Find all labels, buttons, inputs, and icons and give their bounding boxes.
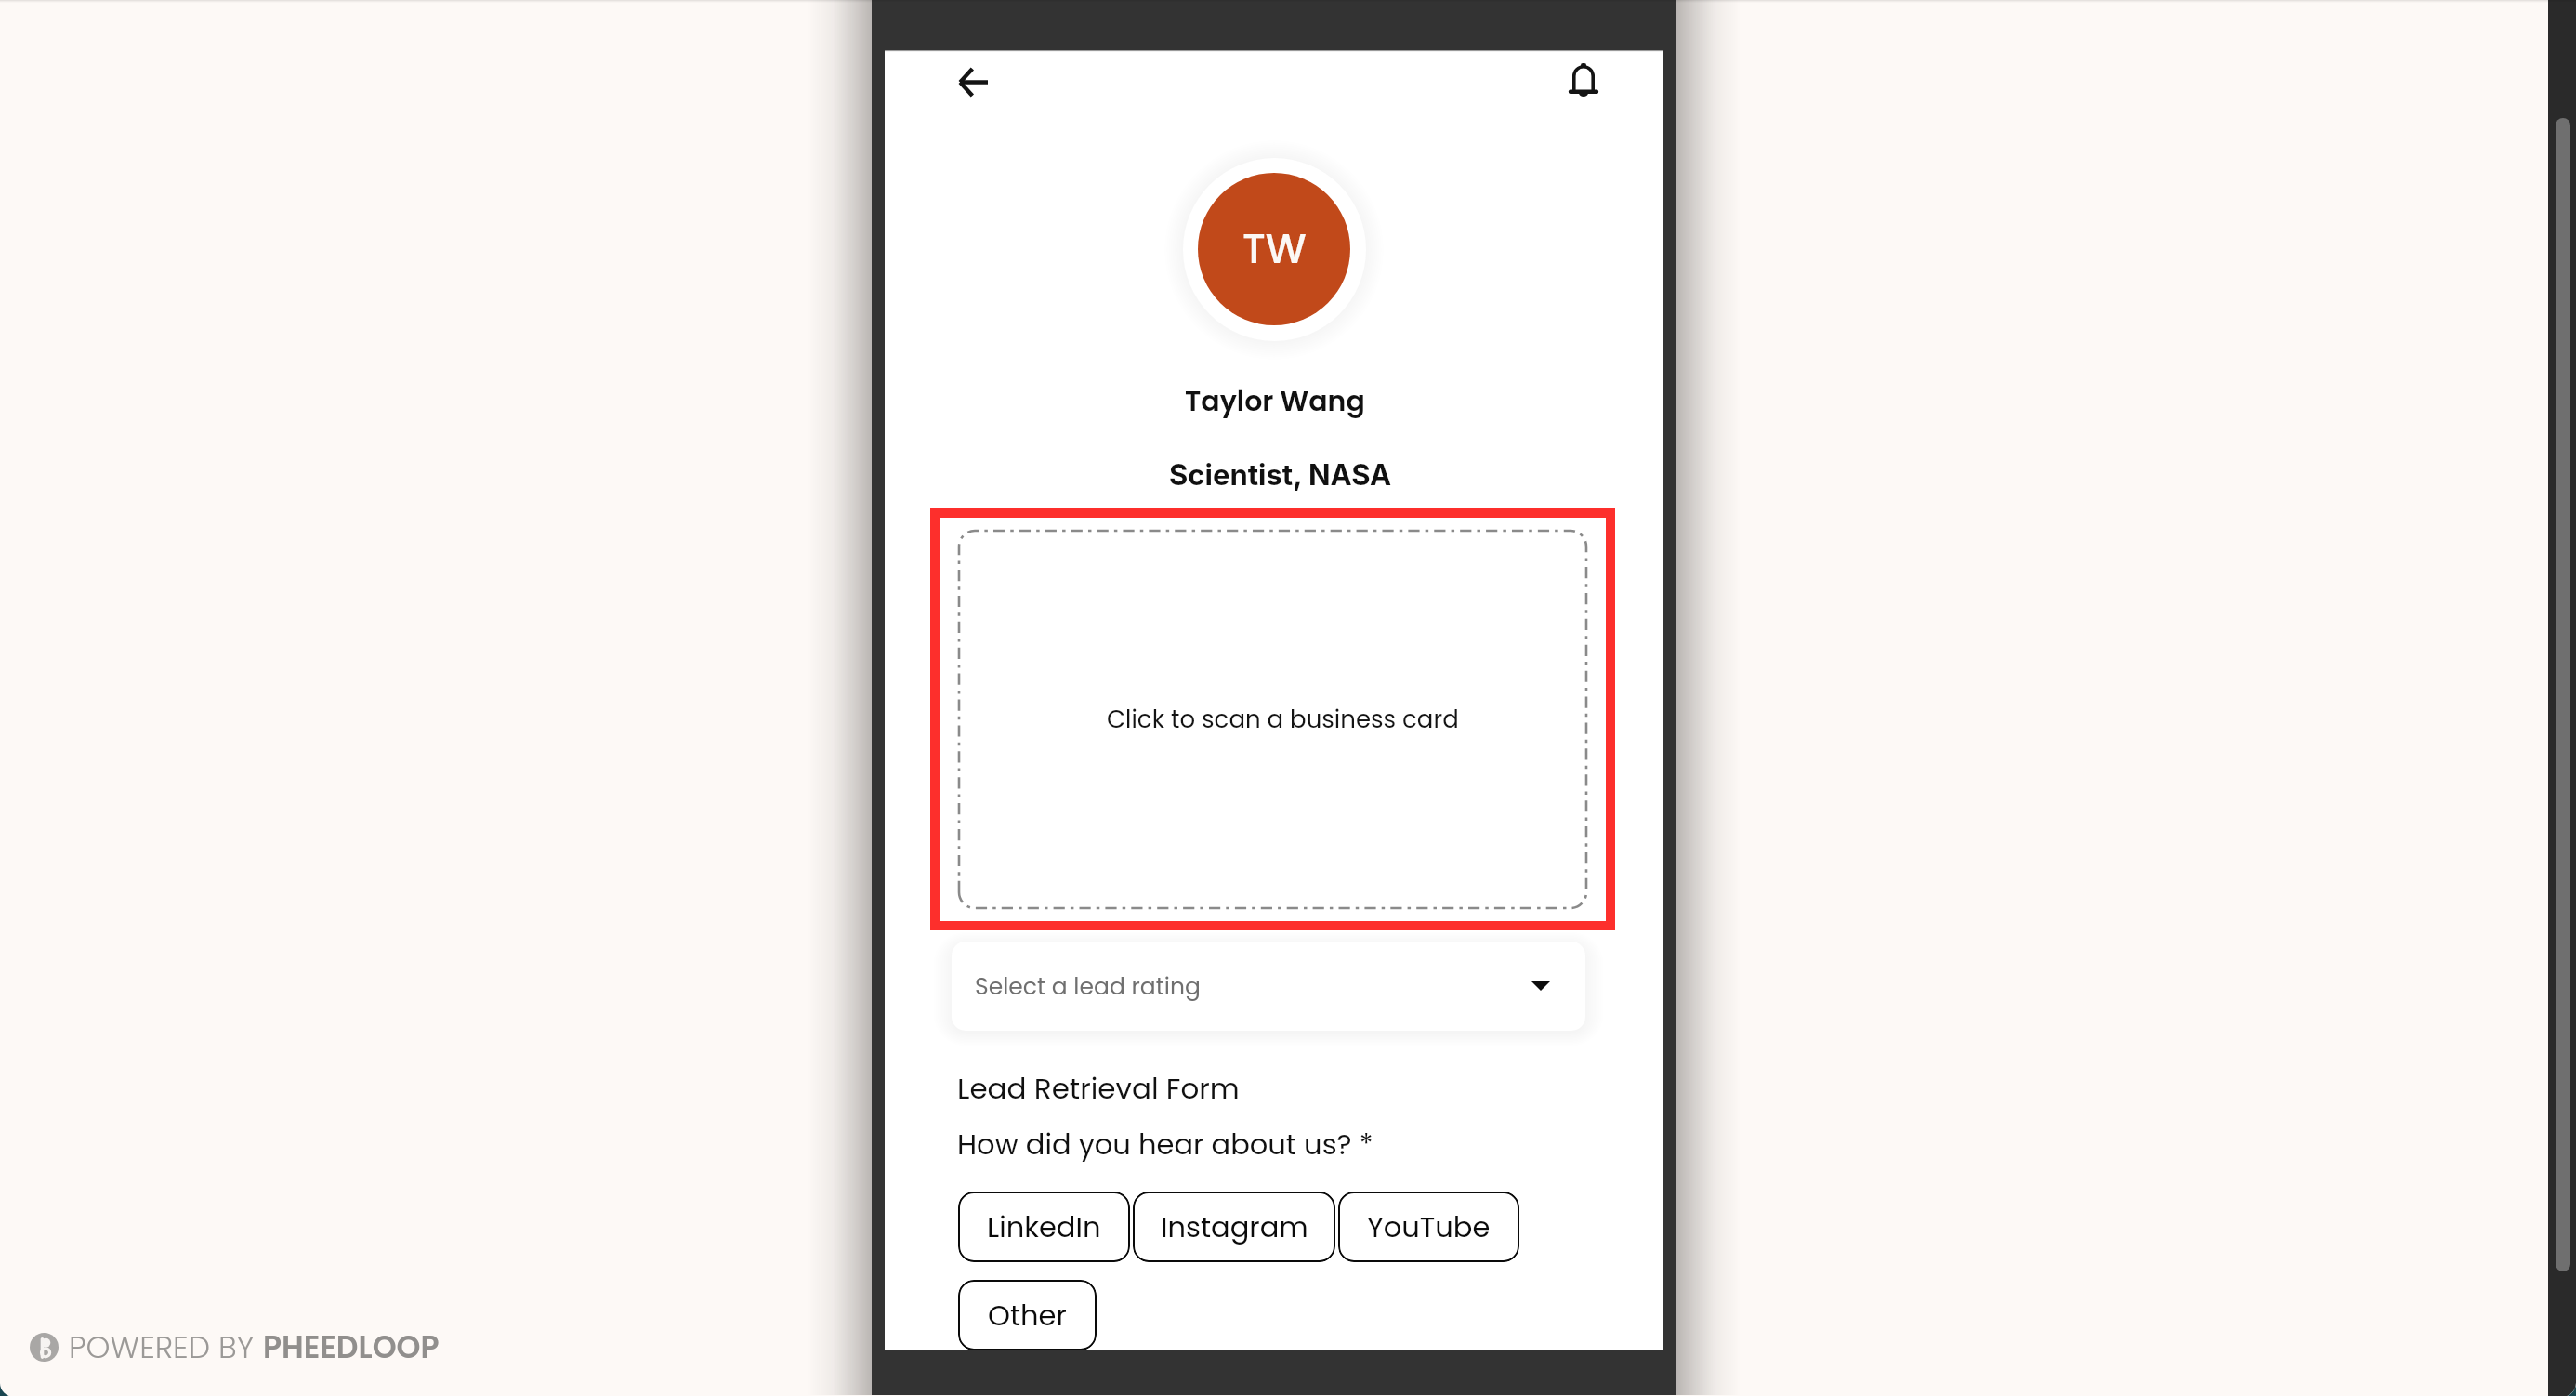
staticText: Lead Retrieval Form xyxy=(957,1068,1240,1108)
button[interactable]: LinkedIn xyxy=(958,1192,1130,1262)
staticText: Other xyxy=(988,1296,1067,1336)
button[interactable]: Other xyxy=(958,1280,1097,1350)
staticText: TW xyxy=(1242,220,1307,278)
staticText: Scientist, NASA xyxy=(1169,457,1392,493)
button[interactable]: YouTube xyxy=(1338,1192,1519,1262)
button[interactable]: Click to scan a business card xyxy=(940,518,1606,921)
staticText: Click to scan a business card xyxy=(1107,703,1459,736)
staticText: Taylor Wang xyxy=(1185,382,1365,421)
staticText: YouTube xyxy=(1367,1207,1491,1247)
staticText: Instagram xyxy=(1161,1207,1308,1247)
button[interactable]: Back xyxy=(937,50,1009,113)
staticText: POWERED BY xyxy=(69,1325,263,1368)
staticText: How did you hear about us? * xyxy=(957,1125,1373,1165)
staticText: PHEEDLOOP xyxy=(263,1325,440,1368)
staticText: Select a lead rating xyxy=(975,970,1201,1003)
button[interactable]: Notifications xyxy=(1547,50,1620,113)
button[interactable]: Select a lead rating xyxy=(952,942,1585,1031)
button[interactable]: Instagram xyxy=(1133,1192,1335,1262)
staticText: LinkedIn xyxy=(987,1207,1101,1247)
